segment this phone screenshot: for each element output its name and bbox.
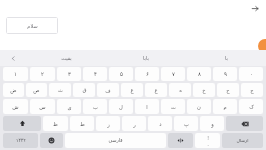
button[interactable]: ع bbox=[145, 83, 167, 97]
staticText: ح bbox=[226, 87, 230, 93]
button[interactable]: ز bbox=[96, 116, 120, 131]
button[interactable]: ل bbox=[109, 99, 133, 114]
button[interactable]: د bbox=[148, 116, 172, 131]
button[interactable]: ؟۱۲۳ bbox=[3, 133, 38, 148]
button[interactable]: ۶ bbox=[135, 67, 159, 81]
button[interactable]: بابا bbox=[106, 50, 186, 66]
staticText: با bbox=[225, 55, 228, 61]
button[interactable]: ن bbox=[187, 99, 211, 114]
staticText: ه bbox=[179, 87, 182, 93]
button[interactable]: ب bbox=[83, 99, 107, 114]
staticText: ۶ bbox=[146, 71, 149, 77]
staticText: ش bbox=[12, 104, 19, 110]
staticText: ق bbox=[82, 87, 87, 93]
button[interactable]: ۳ bbox=[57, 67, 81, 81]
staticText: ۵ bbox=[120, 71, 123, 77]
button[interactable]: Expand suggestions bbox=[0, 50, 26, 66]
staticText: ک bbox=[249, 104, 254, 110]
button[interactable]: خ bbox=[193, 83, 215, 97]
staticText: پ bbox=[184, 121, 189, 127]
button[interactable]: ت bbox=[161, 99, 185, 114]
staticText: ۲ bbox=[41, 71, 44, 77]
staticText: د bbox=[159, 121, 162, 127]
button[interactable]: Avatar bbox=[258, 39, 266, 53]
staticText: ظ bbox=[53, 121, 58, 127]
staticText: ۷ bbox=[172, 71, 175, 77]
staticText: سلام bbox=[27, 23, 38, 29]
staticText: ز bbox=[107, 121, 110, 127]
staticText: ث bbox=[58, 87, 63, 93]
staticText: ر bbox=[133, 121, 136, 127]
staticText: ارسال bbox=[236, 138, 249, 143]
staticText: ل bbox=[119, 104, 123, 110]
staticText: و bbox=[211, 121, 214, 127]
staticText: ب bbox=[93, 104, 98, 110]
button[interactable]: با bbox=[186, 50, 266, 66]
button[interactable]: Move cursor bbox=[168, 133, 193, 148]
button[interactable]: ی bbox=[57, 99, 81, 114]
button[interactable]: ارسال bbox=[222, 133, 263, 148]
button[interactable]: Backspace bbox=[226, 116, 263, 131]
button[interactable]: ۹ bbox=[213, 67, 237, 81]
button[interactable]: ث bbox=[49, 83, 71, 97]
staticText: غ bbox=[130, 87, 134, 93]
staticText: ف bbox=[105, 87, 111, 93]
button[interactable]: ک bbox=[239, 99, 263, 114]
button[interactable]: ۵ bbox=[109, 67, 133, 81]
button[interactable]: ف bbox=[97, 83, 119, 97]
staticText: ع bbox=[154, 87, 158, 93]
button[interactable]: ۰ bbox=[239, 67, 263, 81]
button[interactable]: و bbox=[200, 116, 224, 131]
button[interactable]: ! . bbox=[195, 133, 220, 148]
staticText: ! . bbox=[207, 135, 209, 147]
staticText: بابا bbox=[143, 55, 149, 61]
staticText: ۰ bbox=[250, 71, 253, 77]
staticText: م bbox=[223, 104, 227, 110]
button[interactable]: غ bbox=[121, 83, 143, 97]
button[interactable]: سلام bbox=[6, 17, 58, 34]
button[interactable]: م bbox=[213, 99, 237, 114]
staticText: ا bbox=[146, 104, 148, 110]
button[interactable]: ۴ bbox=[83, 67, 107, 81]
staticText: ن bbox=[197, 104, 201, 110]
staticText: خ bbox=[202, 87, 206, 93]
button[interactable]: ح bbox=[217, 83, 239, 97]
staticText: ۳ bbox=[68, 71, 71, 77]
staticText: بفیت bbox=[61, 55, 72, 61]
staticText: ۹ bbox=[224, 71, 227, 77]
button[interactable]: ط bbox=[70, 116, 94, 131]
staticText: ی bbox=[67, 104, 72, 110]
button[interactable]: ض bbox=[3, 83, 24, 97]
button[interactable]: ظ bbox=[43, 116, 68, 131]
staticText: ۴ bbox=[94, 71, 97, 77]
staticText: ؟۱۲۳ bbox=[16, 138, 26, 143]
staticText: ج bbox=[250, 87, 254, 93]
button[interactable]: بفیت bbox=[26, 50, 106, 66]
button[interactable]: پ bbox=[174, 116, 198, 131]
button[interactable]: Message status bbox=[250, 4, 260, 14]
staticText: س bbox=[39, 104, 46, 110]
button[interactable]: ۱ bbox=[3, 67, 28, 81]
button[interactable]: Shift bbox=[3, 116, 41, 131]
staticText: ۱ bbox=[14, 71, 17, 77]
button[interactable]: ه bbox=[169, 83, 191, 97]
button[interactable]: فارسی bbox=[65, 133, 166, 148]
staticText: ض bbox=[10, 87, 17, 93]
staticText: ۸ bbox=[198, 71, 201, 77]
staticText: ت bbox=[171, 104, 176, 110]
button[interactable]: ق bbox=[73, 83, 95, 97]
button[interactable]: ۸ bbox=[187, 67, 211, 81]
button[interactable]: ۷ bbox=[161, 67, 185, 81]
button[interactable]: ۲ bbox=[30, 67, 55, 81]
button[interactable]: ج bbox=[241, 83, 263, 97]
button[interactable]: س bbox=[30, 99, 55, 114]
button[interactable]: ص bbox=[26, 83, 47, 97]
staticText: فارسی bbox=[108, 138, 123, 144]
button[interactable]: ا bbox=[135, 99, 159, 114]
button[interactable]: ر bbox=[122, 116, 146, 131]
button[interactable]: Emoji bbox=[40, 133, 63, 148]
button[interactable]: ش bbox=[3, 99, 28, 114]
staticText: ط bbox=[80, 121, 85, 127]
staticText: ص bbox=[33, 87, 40, 93]
